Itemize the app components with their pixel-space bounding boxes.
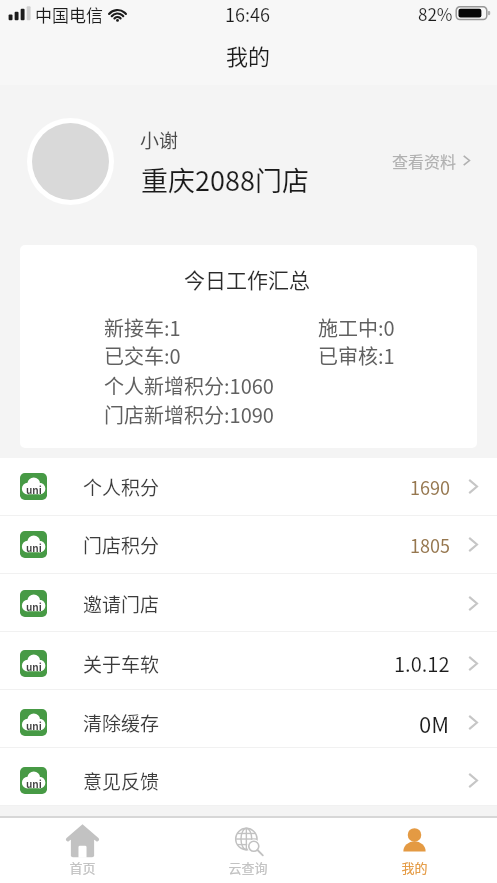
- staticText: 首页: [69, 858, 96, 877]
- staticText: 意见反馈: [83, 767, 160, 795]
- button[interactable]: uni: [0, 690, 497, 747]
- staticText: 重庆2088门店: [141, 160, 309, 199]
- staticText: 1690: [410, 474, 450, 500]
- staticText: 新接车:1: [104, 313, 181, 342]
- staticText: uni: [26, 599, 42, 613]
- button[interactable]: uni: [0, 632, 497, 689]
- staticText: 1805: [410, 532, 450, 558]
- staticText: 已审核:1: [318, 341, 395, 370]
- staticText: uni: [26, 659, 42, 673]
- staticText: 0M: [419, 707, 450, 739]
- staticText: 云查询: [228, 858, 268, 877]
- staticText: 门店积分: [83, 531, 160, 559]
- button[interactable]: uni: [0, 574, 497, 631]
- staticText: uni: [26, 776, 42, 790]
- staticText: 我的: [401, 858, 428, 877]
- button[interactable]: 查看资料: [386, 143, 476, 178]
- staticText: 关于车软: [83, 650, 160, 678]
- button[interactable]: uni: [0, 516, 497, 573]
- staticText: 施工中:0: [318, 313, 395, 342]
- staticText: 个人新增积分:1060: [104, 371, 274, 400]
- button[interactable]: Profile: [331, 818, 497, 883]
- button[interactable]: Cloud search: [165, 818, 331, 883]
- staticText: 中国电信: [35, 2, 103, 27]
- staticText: 82%: [418, 1, 453, 26]
- staticText: 今日工作汇总: [184, 264, 310, 294]
- staticText: uni: [26, 540, 42, 554]
- staticText: 门店新增积分:1090: [104, 400, 274, 429]
- staticText: 已交车:0: [104, 341, 181, 370]
- button[interactable]: uni: [0, 748, 497, 805]
- staticText: 邀请门店: [83, 590, 160, 618]
- staticText: 我的: [226, 39, 271, 71]
- button[interactable]: Home: [0, 818, 165, 883]
- staticText: 清除缓存: [83, 709, 160, 737]
- staticText: uni: [26, 482, 42, 496]
- staticText: 小谢: [140, 126, 179, 154]
- staticText: 16:46: [225, 1, 270, 27]
- staticText: 查看资料: [392, 149, 457, 172]
- staticText: 个人积分: [83, 473, 160, 501]
- button[interactable]: uni: [0, 458, 497, 515]
- staticText: uni: [26, 718, 42, 732]
- staticText: 1.0.12: [394, 649, 450, 678]
